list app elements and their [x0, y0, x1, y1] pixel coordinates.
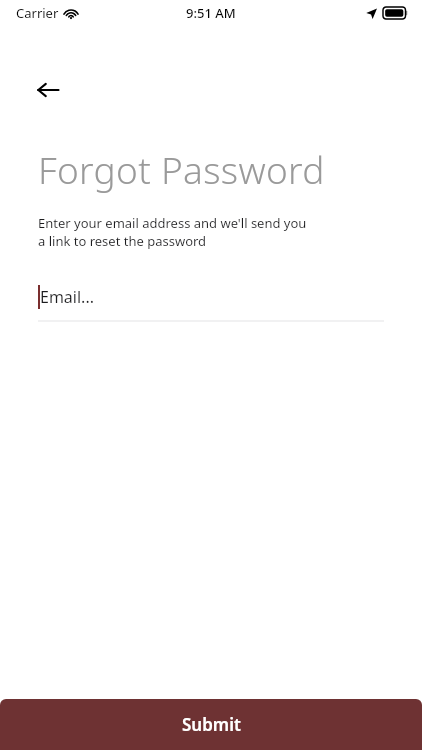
staticText: Submit	[182, 713, 241, 736]
staticText: Forgot Password	[38, 144, 325, 194]
staticText: Email...	[40, 286, 94, 308]
button[interactable]: Email...	[38, 282, 384, 312]
staticText: 9:51 AM	[186, 4, 236, 22]
button[interactable]: Back	[28, 70, 68, 110]
button[interactable]: Submit	[0, 699, 422, 750]
staticText: Enter your email address and we'll send …	[38, 214, 307, 250]
staticText: Carrier	[16, 4, 59, 22]
